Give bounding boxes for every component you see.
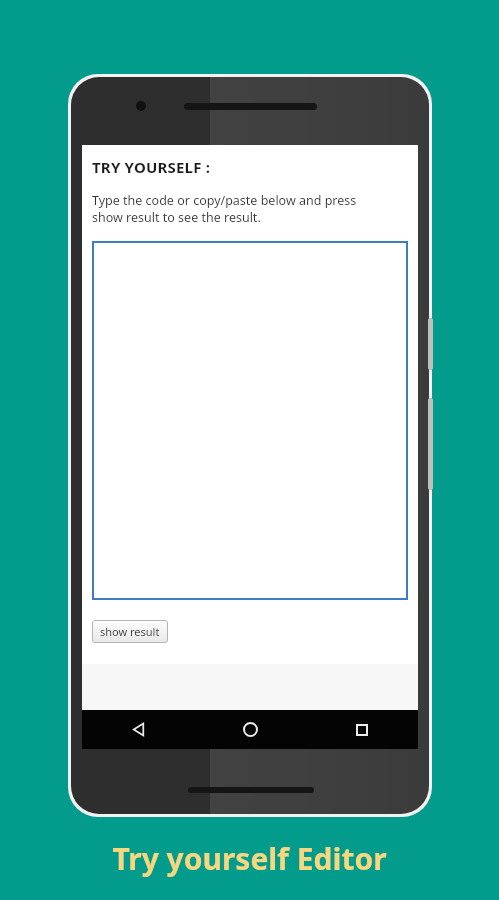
staticText: TRY YOURSELF : [92,157,211,177]
button[interactable]: Recent apps [306,710,418,749]
button[interactable]: Home [194,710,306,749]
button[interactable]: show result [92,620,168,643]
button[interactable]: Code editor input [92,241,408,600]
staticText: show result [100,624,160,639]
staticText: Try yourself Editor [112,838,387,879]
staticText: Type the code or copy/paste below and pr… [92,192,357,226]
button[interactable]: Back [82,710,194,749]
